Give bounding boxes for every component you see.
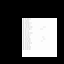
button[interactable]: List item (22, 22, 57, 24)
button[interactable]: List item (22, 26, 57, 28)
button[interactable]: List item (22, 18, 57, 20)
button[interactable]: List item (22, 36, 57, 38)
button[interactable]: List item (22, 44, 57, 46)
button[interactable]: List item (22, 38, 57, 40)
button[interactable]: List item (22, 46, 57, 48)
button[interactable]: List item (22, 40, 57, 42)
button[interactable]: List item (22, 34, 57, 36)
button[interactable]: List item (22, 28, 57, 30)
button[interactable]: List item (22, 42, 57, 44)
button[interactable]: List item (22, 32, 57, 34)
button[interactable]: List item (22, 24, 57, 26)
button[interactable]: List item (22, 48, 57, 50)
button[interactable]: List item (22, 30, 57, 32)
button[interactable]: List item (22, 20, 57, 22)
